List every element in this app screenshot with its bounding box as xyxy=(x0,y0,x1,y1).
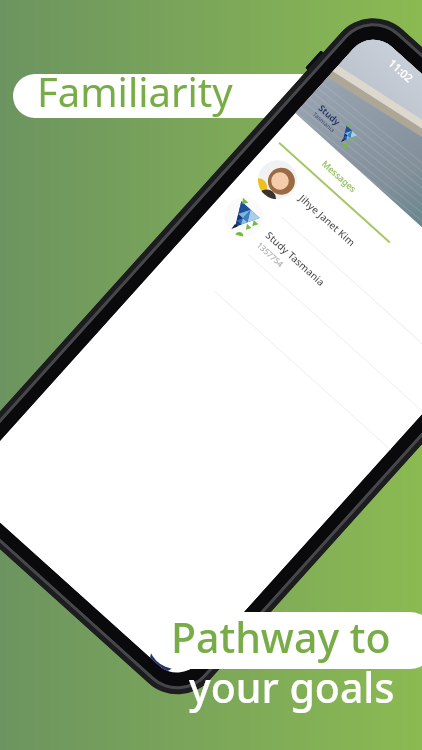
staticText: Familiarity xyxy=(37,64,233,118)
staticText: your goals xyxy=(189,659,395,715)
button[interactable] xyxy=(170,215,422,450)
button[interactable] xyxy=(148,612,422,669)
staticText: Pathway to xyxy=(171,609,391,665)
staticText: Study xyxy=(316,101,344,128)
staticText: 1357754 xyxy=(255,239,287,270)
staticText: 11:02 xyxy=(385,55,417,86)
button[interactable] xyxy=(13,74,333,118)
button[interactable]: Notices xyxy=(383,213,422,334)
staticText: Study Tasmania xyxy=(263,228,328,289)
button[interactable]: New message xyxy=(148,640,181,673)
button[interactable]: Jihye Janet Kim xyxy=(237,140,422,376)
button[interactable]: Messages xyxy=(272,113,406,238)
staticText: Jihye Janet Kim xyxy=(296,191,359,250)
staticText: Tasmania xyxy=(311,110,336,134)
staticText: Messages xyxy=(320,157,359,194)
button[interactable]: Study Tasmania xyxy=(203,178,422,413)
